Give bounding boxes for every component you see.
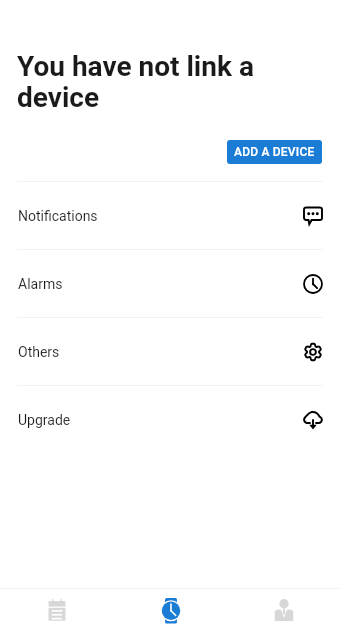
staticText: You have not link a device	[17, 50, 278, 113]
button[interactable]: Others	[0, 318, 340, 385]
staticText: Alarms	[18, 276, 63, 292]
button[interactable]: Watch	[114, 589, 227, 627]
staticText: ADD A DEVICE	[234, 145, 315, 159]
button[interactable]: Schedule	[0, 589, 114, 627]
staticText: Others	[18, 344, 60, 360]
button[interactable]: Profile	[227, 589, 340, 627]
button[interactable]: Notifications	[0, 182, 340, 249]
button[interactable]: ADD A DEVICE	[227, 140, 322, 164]
staticText: Upgrade	[18, 412, 71, 428]
button[interactable]: Upgrade	[0, 386, 340, 453]
staticText: Notifications	[18, 208, 98, 224]
button[interactable]: Alarms	[0, 250, 340, 317]
